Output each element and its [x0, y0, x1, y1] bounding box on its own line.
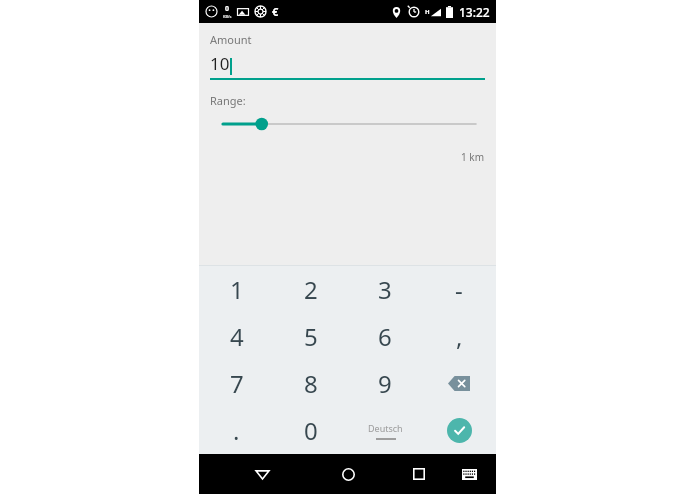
- staticText: 7: [230, 367, 244, 400]
- staticText: .: [233, 414, 240, 447]
- staticText: 1: [230, 273, 244, 306]
- button[interactable]: 2: [274, 266, 348, 313]
- staticText: 0: [304, 414, 318, 447]
- staticText: 6: [378, 320, 392, 353]
- button[interactable]: [210, 116, 485, 132]
- staticText: H: [425, 8, 430, 16]
- button[interactable]: 7: [199, 360, 274, 407]
- button[interactable]: Home: [333, 459, 363, 489]
- staticText: ,: [456, 320, 463, 353]
- button[interactable]: 4: [199, 313, 274, 360]
- staticText: Amount: [210, 32, 252, 47]
- staticText: €: [272, 4, 279, 19]
- button[interactable]: 9: [348, 360, 422, 407]
- staticText: 10: [210, 52, 230, 75]
- staticText: KB/s: [223, 14, 232, 19]
- button[interactable]: 6: [348, 313, 422, 360]
- staticText: 13:22: [459, 4, 490, 20]
- button[interactable]: 1: [199, 266, 274, 313]
- staticText: -: [455, 273, 463, 306]
- staticText: 3: [378, 273, 392, 306]
- button[interactable]: 0: [274, 407, 348, 454]
- button[interactable]: -: [422, 266, 496, 313]
- button[interactable]: Confirm: [422, 407, 496, 454]
- staticText: Deutsch: [368, 422, 403, 434]
- staticText: 4: [230, 320, 244, 353]
- staticText: 8: [304, 367, 318, 400]
- button[interactable]: 5: [274, 313, 348, 360]
- staticText: 1 km: [461, 150, 485, 164]
- button[interactable]: Delete: [422, 360, 496, 407]
- button[interactable]: 8: [274, 360, 348, 407]
- button[interactable]: ,: [422, 313, 496, 360]
- button[interactable]: Deutsch: [348, 407, 422, 454]
- button[interactable]: Back: [247, 459, 277, 489]
- button[interactable]: 10: [210, 52, 485, 75]
- button[interactable]: Keyboard: [456, 461, 482, 487]
- staticText: 5: [304, 320, 318, 353]
- staticText: 0: [225, 4, 230, 14]
- button[interactable]: .: [199, 407, 274, 454]
- staticText: Range:: [210, 93, 246, 108]
- button[interactable]: 3: [348, 266, 422, 313]
- staticText: 9: [378, 367, 392, 400]
- staticText: 2: [304, 273, 318, 306]
- button[interactable]: Recents: [404, 459, 434, 489]
